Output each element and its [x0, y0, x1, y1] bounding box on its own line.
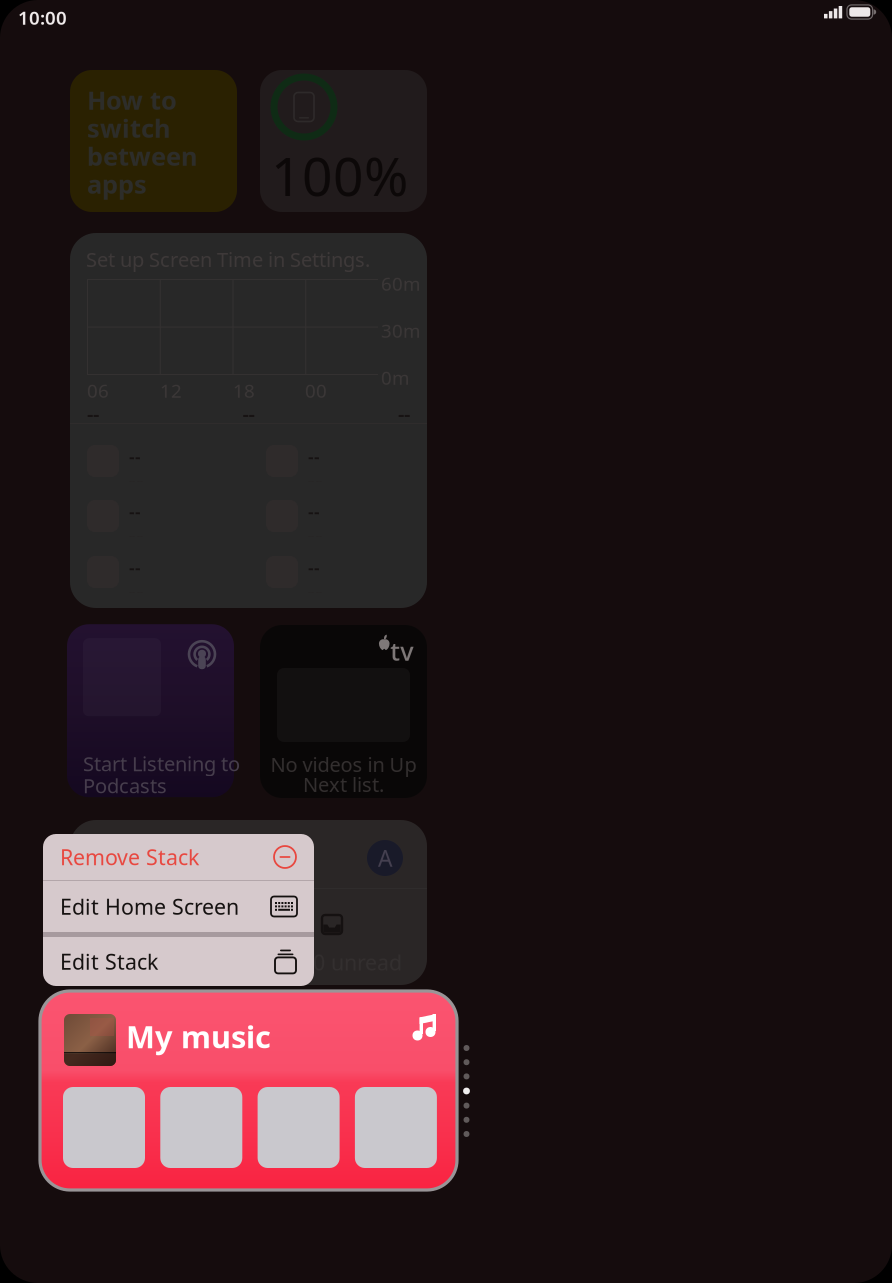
staticText: between — [87, 139, 197, 173]
staticText: 00 — [305, 378, 327, 403]
staticText: -- — [308, 445, 320, 468]
button[interactable]: tv — [260, 625, 427, 798]
staticText: 10:00 — [18, 5, 67, 30]
staticText: -- — [129, 556, 141, 579]
staticText: 12 — [160, 378, 182, 403]
staticText: -- — [398, 400, 410, 427]
staticText: -- — [242, 400, 254, 427]
staticText: 60m — [381, 271, 420, 296]
button[interactable]: Set up Screen Time in Settings. — [70, 233, 427, 608]
button[interactable]: 100% — [260, 70, 427, 212]
button[interactable]: How to — [70, 70, 237, 212]
staticText: 0 unread — [313, 948, 402, 976]
staticText: -- — [308, 556, 320, 579]
staticText: tv — [390, 634, 413, 668]
staticText: My music — [126, 1016, 271, 1057]
button[interactable]: Remove Stack — [43, 834, 314, 880]
staticText: A — [378, 843, 392, 873]
staticText: Set up Screen Time in Settings. — [86, 246, 370, 273]
staticText: apps — [87, 167, 147, 201]
button[interactable]: Edit Home Screen — [43, 881, 314, 932]
button[interactable]: A — [70, 820, 427, 985]
staticText: 100% — [271, 140, 408, 211]
staticText: 06 — [87, 378, 109, 403]
button[interactable]: Start Listening to — [70, 625, 237, 798]
staticText: Start Listening to — [83, 750, 240, 777]
staticText: 0m — [381, 365, 409, 390]
staticText: How to — [87, 83, 177, 117]
staticText: 18 — [233, 378, 255, 403]
staticText: -- — [87, 400, 99, 427]
staticText: Edit Stack — [60, 947, 158, 976]
staticText: -- — [308, 500, 320, 523]
staticText: Podcasts — [83, 772, 167, 799]
button[interactable]: My music — [40, 991, 457, 1190]
staticText: -- — [129, 445, 141, 468]
staticText: switch — [87, 111, 170, 145]
staticText: No videos in Up — [270, 751, 416, 778]
staticText: 30m — [381, 318, 420, 343]
staticText: Next list. — [303, 771, 384, 798]
button[interactable]: Edit Stack — [43, 937, 314, 986]
staticText: Remove Stack — [60, 843, 199, 871]
staticText: -- — [129, 500, 141, 523]
staticText: Edit Home Screen — [60, 892, 239, 921]
